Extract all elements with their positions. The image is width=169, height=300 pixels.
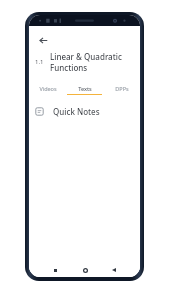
staticText: Linear & Quadratic Functions	[50, 51, 136, 73]
button[interactable]: Videos	[29, 82, 66, 94]
button[interactable]: Texts	[66, 82, 103, 94]
button[interactable]: Quick Notes	[29, 102, 140, 120]
button[interactable]: Back	[33, 30, 53, 50]
staticText: DPPs	[115, 85, 129, 92]
button[interactable]: Home	[79, 264, 91, 276]
button[interactable]: Recents	[49, 264, 61, 276]
staticText: 1.1	[35, 58, 44, 66]
button[interactable]: Back	[108, 264, 120, 276]
staticText: Videos	[39, 85, 57, 92]
staticText: Texts	[78, 85, 92, 92]
staticText: Quick Notes	[53, 106, 100, 117]
button[interactable]: DPPs	[103, 82, 140, 94]
